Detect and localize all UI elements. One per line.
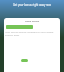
- staticText: Claim bonus: [4, 19, 60, 22]
- staticText: Your bonus will be credited to your wall…: [5, 30, 54, 33]
- staticText: Get your bonus right away now: [0, 3, 64, 7]
- button[interactable]: Continue: [21, 59, 28, 62]
- staticText: shortly after: [5, 33, 20, 36]
- button[interactable]: [6, 25, 33, 29]
